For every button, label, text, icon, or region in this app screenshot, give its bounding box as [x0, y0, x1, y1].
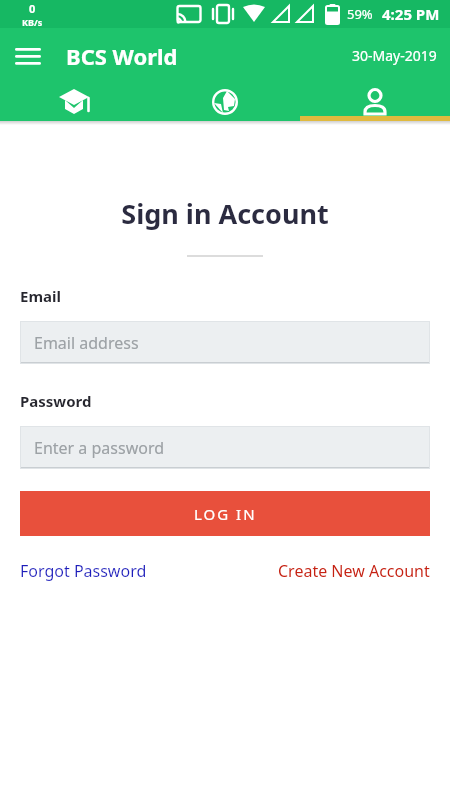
button[interactable] — [300, 83, 450, 121]
button[interactable]: LOG IN — [20, 491, 430, 536]
button[interactable]: Enter a password — [20, 426, 430, 469]
staticText: KB/s — [22, 16, 43, 28]
staticText: 4:25 PM — [382, 4, 440, 24]
staticText: 30-May-2019 — [352, 46, 437, 65]
button[interactable]: Create New Account — [278, 560, 430, 582]
staticText: Sign in Account — [0, 195, 450, 232]
staticText: Email address — [34, 332, 139, 354]
button[interactable]: Email address — [20, 321, 430, 364]
button[interactable] — [0, 83, 150, 121]
button[interactable] — [8, 36, 48, 76]
staticText: Enter a password — [34, 437, 165, 459]
staticText: BCS World — [66, 41, 178, 71]
staticText: 0 — [29, 1, 36, 16]
button[interactable] — [150, 83, 300, 121]
button[interactable]: Forgot Password — [20, 560, 147, 582]
staticText: 59% — [347, 5, 373, 23]
staticText: Password — [20, 391, 92, 411]
staticText: Email — [20, 286, 61, 306]
staticText: LOG IN — [194, 504, 257, 524]
